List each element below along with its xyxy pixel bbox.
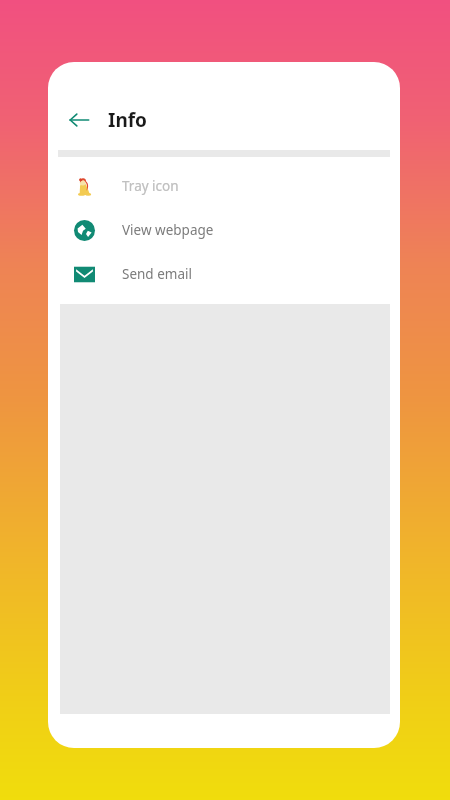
button[interactable]: Tray icon <box>48 164 400 208</box>
button[interactable]: Send email <box>48 252 400 296</box>
button[interactable]: View webpage <box>48 208 400 252</box>
staticText: Tray icon <box>122 177 179 195</box>
staticText: View webpage <box>122 221 214 239</box>
button[interactable]: Back <box>62 103 96 137</box>
staticText: Info <box>108 107 147 133</box>
staticText: Send email <box>122 265 192 283</box>
